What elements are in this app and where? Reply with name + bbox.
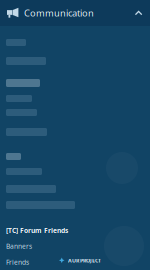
button[interactable]: Communication	[0, 0, 150, 26]
staticText: Friends	[6, 258, 29, 267]
button[interactable]: [TC] Forum Friends	[6, 226, 68, 235]
staticText: Banners	[6, 242, 32, 251]
button[interactable]: AUR PROJECT	[59, 257, 101, 264]
staticText: AUR PROJECT	[68, 257, 101, 264]
button[interactable]: Friends	[6, 258, 29, 267]
button[interactable]: Banners	[6, 242, 32, 251]
staticText: Communication	[24, 7, 94, 19]
staticText: [TC] Forum Friends	[6, 226, 68, 235]
